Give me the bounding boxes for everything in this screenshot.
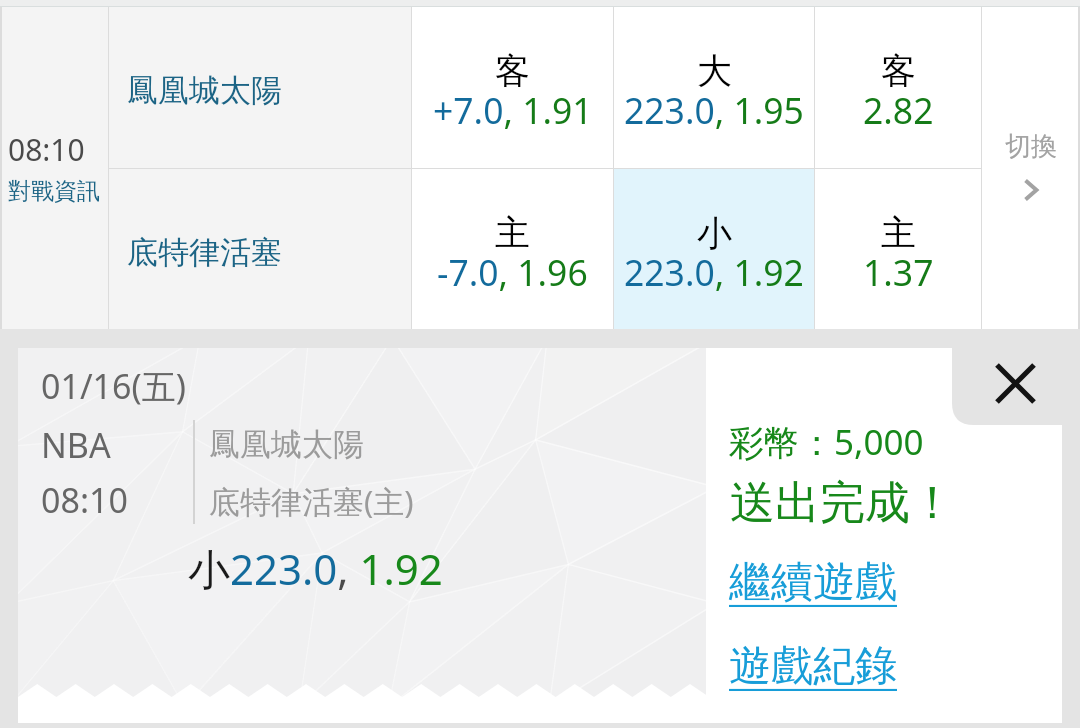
staticText: 切換: [1005, 130, 1057, 163]
button[interactable]: 主: [815, 169, 981, 329]
button[interactable]: 鳳凰城太陽: [109, 7, 411, 168]
button[interactable]: 底特律活塞: [109, 169, 411, 329]
button[interactable]: 小: [614, 169, 814, 329]
staticText: +7.0, 1.91: [433, 86, 593, 134]
button[interactable]: 切換: [982, 7, 1080, 329]
staticText: 大: [697, 49, 732, 93]
staticText: 小223.0, 1.92: [188, 540, 443, 597]
staticText: 底特律活塞(主): [209, 480, 414, 522]
staticText: 繼續遊戲: [729, 556, 897, 609]
staticText: NBA: [41, 422, 111, 468]
staticText: 客: [495, 49, 530, 93]
staticText: 223.0, 1.92: [624, 248, 804, 296]
staticText: 對戰資訊: [8, 177, 100, 206]
staticText: 遊戲紀錄: [729, 640, 897, 693]
button[interactable]: 大: [614, 7, 814, 168]
staticText: 2.82: [863, 86, 934, 134]
staticText: 主: [881, 211, 916, 255]
button[interactable]: 主: [412, 169, 613, 329]
staticText: 主: [495, 211, 530, 255]
staticText: 08:10: [8, 129, 85, 170]
staticText: 小: [697, 211, 732, 255]
staticText: 客: [881, 49, 916, 93]
button[interactable]: 08:10: [0, 7, 108, 329]
staticText: 送出完成！: [730, 475, 955, 532]
staticText: 鳳凰城太陽: [127, 71, 282, 110]
button[interactable]: 關閉: [975, 343, 1055, 423]
staticText: 鳳凰城太陽: [209, 425, 364, 464]
button[interactable]: 客: [412, 7, 613, 168]
staticText: 08:10: [41, 477, 128, 523]
button[interactable]: 遊戲紀錄: [729, 636, 897, 697]
staticText: 01/16(五): [41, 363, 186, 409]
staticText: 1.37: [863, 248, 934, 296]
button[interactable]: 客: [815, 7, 981, 168]
button[interactable]: 繼續遊戲: [729, 552, 897, 613]
staticText: 底特律活塞: [127, 233, 282, 272]
staticText: -7.0, 1.96: [437, 248, 588, 296]
staticText: 彩幣：5,000: [729, 418, 924, 466]
staticText: 223.0, 1.95: [624, 86, 804, 134]
